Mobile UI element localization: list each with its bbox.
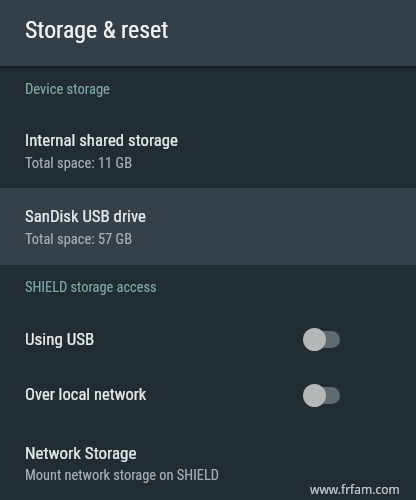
button[interactable] — [0, 312, 416, 368]
staticText: Network Storage — [25, 443, 137, 463]
button[interactable] — [0, 0, 416, 66]
staticText: Mount network storage on SHIELD — [25, 467, 220, 484]
button[interactable] — [0, 424, 416, 500]
button[interactable] — [0, 188, 416, 265]
staticText: SanDisk USB drive — [25, 206, 146, 226]
button[interactable]: Using USB toggle, off — [303, 328, 340, 351]
staticText: Total space: 57 GB — [25, 231, 133, 248]
staticText: Storage & reset — [25, 16, 169, 44]
button[interactable] — [0, 111, 416, 188]
staticText: Internal shared storage — [25, 130, 178, 150]
button[interactable]: Over local network toggle, off — [303, 384, 340, 407]
staticText: Device storage — [25, 80, 110, 97]
staticText: Total space: 11 GB — [25, 155, 133, 172]
staticText: Over local network — [25, 385, 147, 404]
staticText: SHIELD storage access — [25, 279, 157, 296]
staticText: Using USB — [25, 329, 95, 349]
staticText: www.frfam.com — [310, 481, 400, 497]
button[interactable] — [0, 368, 416, 424]
